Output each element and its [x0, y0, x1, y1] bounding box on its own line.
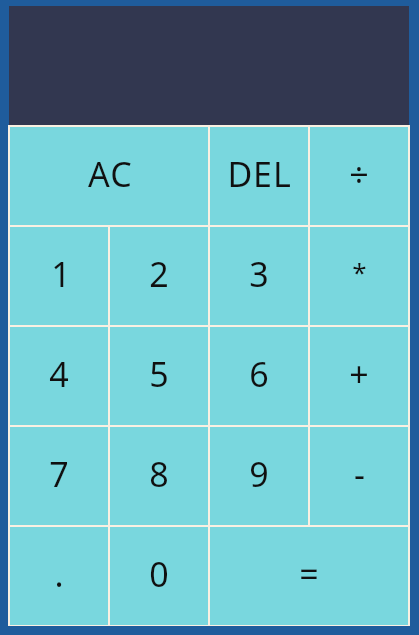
staticText: -	[354, 451, 365, 497]
button[interactable]: Nine	[210, 427, 308, 525]
staticText: ÷	[349, 151, 369, 197]
button[interactable]: Four	[10, 327, 108, 425]
button[interactable]: Three	[210, 227, 308, 325]
staticText: 8	[149, 451, 169, 497]
staticText: +	[349, 351, 369, 397]
button[interactable]: Delete	[210, 127, 308, 225]
staticText: DEL	[227, 151, 292, 197]
staticText: AC	[88, 151, 133, 197]
button[interactable]: Eight	[110, 427, 208, 525]
staticText: *	[352, 254, 367, 289]
button[interactable]: All clear	[10, 127, 208, 225]
button[interactable]: Minus	[310, 427, 408, 525]
button[interactable]: Multiply	[310, 227, 408, 325]
staticText: 4	[49, 351, 69, 397]
button[interactable]: Five	[110, 327, 208, 425]
staticText: =	[299, 551, 319, 597]
staticText: .	[54, 551, 64, 597]
staticText: 2	[149, 251, 169, 297]
staticText: 0	[149, 551, 169, 597]
button[interactable]: Six	[210, 327, 308, 425]
button[interactable]: Zero	[110, 527, 208, 625]
button[interactable]: One	[10, 227, 108, 325]
button[interactable]: Two	[110, 227, 208, 325]
button[interactable]: Plus	[310, 327, 408, 425]
staticText: 7	[49, 451, 69, 497]
staticText: 1	[51, 251, 71, 297]
staticText: 5	[149, 351, 169, 397]
button[interactable]: Decimal point	[10, 527, 108, 625]
staticText: 3	[249, 251, 269, 297]
button[interactable]: Divide	[310, 127, 408, 225]
button[interactable]: Seven	[10, 427, 108, 525]
button[interactable]: Equals	[210, 527, 408, 625]
staticText: 6	[249, 351, 269, 397]
staticText: 9	[249, 451, 269, 497]
